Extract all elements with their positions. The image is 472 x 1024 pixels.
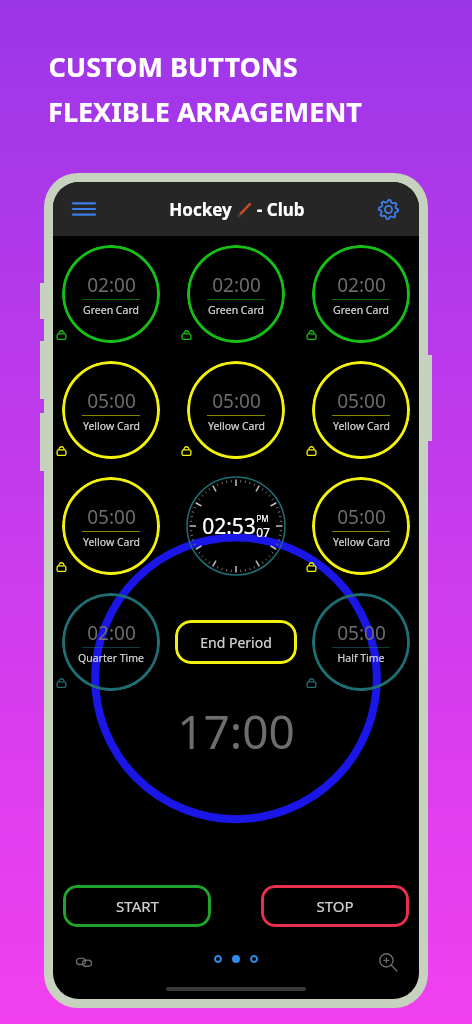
staticText: 02:53 (202, 512, 256, 541)
button[interactable]: End Period (175, 620, 297, 664)
staticText: Half Time (337, 651, 385, 665)
staticText: Yellow Card (83, 535, 140, 549)
button[interactable]: 05:00 (62, 361, 160, 459)
button[interactable]: 02:00 (62, 245, 160, 343)
staticText: 02:00 (212, 272, 261, 298)
staticText: FLEXIBLE ARRAGEMENT (48, 93, 362, 130)
staticText: 02:00 (87, 272, 136, 298)
staticText: 17:00 (177, 700, 295, 763)
button[interactable]: Menu (65, 190, 103, 228)
staticText: Green Card (208, 303, 264, 317)
staticText: End Period (200, 633, 272, 652)
staticText: CUSTOM BUTTONS (48, 48, 298, 85)
staticText: 05:00 (87, 388, 136, 414)
staticText: Quarter Time (78, 651, 144, 665)
button[interactable]: 05:00 (312, 477, 410, 575)
button[interactable]: 02:00 (312, 245, 410, 343)
staticText: 05:00 (337, 504, 386, 530)
button[interactable]: 05:00 (312, 361, 410, 459)
button[interactable]: 02:00 (187, 245, 285, 343)
button[interactable]: 05:00 (62, 477, 160, 575)
staticText: 07 (256, 524, 270, 540)
staticText: Yellow Card (333, 535, 390, 549)
button[interactable]: Link (67, 945, 101, 979)
button[interactable]: START (63, 885, 211, 927)
staticText: 05:00 (212, 388, 261, 414)
staticText: 05:00 (337, 388, 386, 414)
button[interactable]: Settings (369, 190, 407, 228)
staticText: Yellow Card (208, 419, 265, 433)
button[interactable]: 05:00 (312, 593, 410, 691)
button[interactable]: Zoom (371, 945, 405, 979)
staticText: STOP (316, 896, 354, 916)
staticText: - Club (252, 198, 305, 221)
staticText: Hockey (167, 198, 234, 221)
button[interactable]: 05:00 (187, 361, 285, 459)
staticText: Green Card (333, 303, 389, 317)
staticText: Yellow Card (83, 419, 140, 433)
staticText: 02:00 (87, 620, 136, 646)
staticText: 05:00 (337, 620, 386, 646)
staticText: Green Card (83, 303, 139, 317)
staticText: Yellow Card (333, 419, 390, 433)
button[interactable]: 02:00 (62, 593, 160, 691)
staticText: 05:00 (87, 504, 136, 530)
staticText: PM (256, 513, 269, 524)
button[interactable]: STOP (261, 885, 409, 927)
staticText: START (116, 896, 159, 916)
staticText: 02:00 (337, 272, 386, 298)
